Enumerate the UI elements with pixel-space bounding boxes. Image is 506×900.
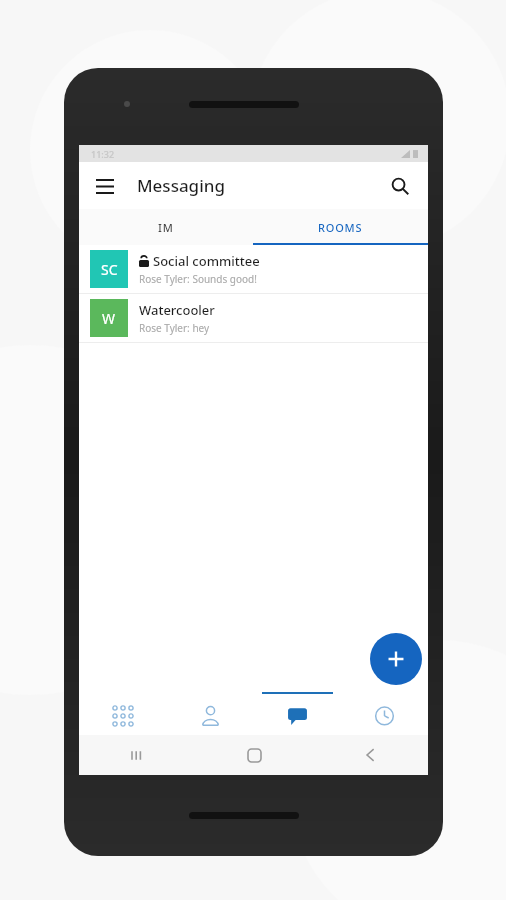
staticText: 11:32 [91,148,115,160]
staticText: IM [158,220,174,235]
button[interactable]: IM [79,209,253,245]
button[interactable]: Dialpad [79,692,167,735]
button[interactable]: Open navigation menu [87,168,123,204]
button[interactable]: Recent apps [79,735,196,775]
button[interactable]: Home [196,735,312,775]
button[interactable]: Recents [341,692,428,735]
staticText: SC [101,260,118,279]
button[interactable]: W [79,294,428,342]
button[interactable]: Contacts [167,692,254,735]
button[interactable]: ROOMS [253,209,428,245]
staticText: Social committee [153,252,260,270]
staticText: ROOMS [318,220,363,235]
button[interactable]: Messages [254,692,341,735]
staticText: Messaging [137,174,225,197]
button[interactable]: SC [79,245,428,293]
staticText: W [102,309,116,328]
button[interactable]: Back [312,735,428,775]
button[interactable]: New conversation [370,633,422,685]
staticText: Watercooler [139,301,215,319]
staticText: Rose Tyler: Sounds good! [139,272,257,286]
button[interactable]: Search [382,168,418,204]
staticText: Rose Tyler: hey [139,321,210,335]
